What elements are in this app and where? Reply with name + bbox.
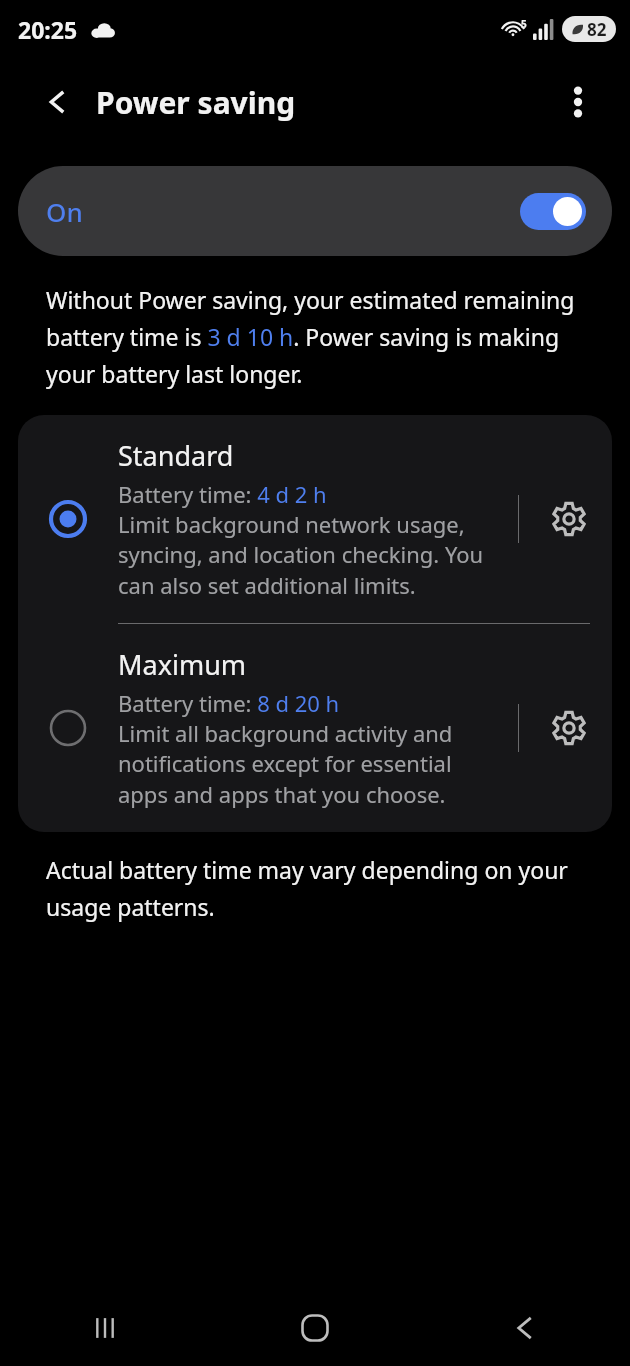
staticText: Battery time: 4 d 2 h xyxy=(118,479,327,509)
button[interactable]: Back xyxy=(34,78,82,126)
button[interactable]: Recents xyxy=(0,1290,210,1366)
staticText: Maximum xyxy=(118,646,247,683)
staticText: Battery time: 8 d 20 h xyxy=(118,688,340,718)
staticText: Limit background network usage, syncing,… xyxy=(118,509,500,601)
button[interactable]: Maximum xyxy=(18,624,612,832)
staticText: Standard xyxy=(118,437,234,474)
staticText: Actual battery time may vary depending o… xyxy=(46,854,584,923)
button[interactable]: Back xyxy=(420,1290,630,1366)
staticText: On xyxy=(46,194,83,229)
staticText: 5 xyxy=(521,17,527,31)
button[interactable]: On xyxy=(18,166,612,256)
staticText: 20:25 xyxy=(18,14,78,45)
button[interactable]: Home xyxy=(210,1290,420,1366)
button[interactable]: Settings for Standard xyxy=(543,493,595,545)
staticText: Without Power saving, your estimated rem… xyxy=(46,284,584,390)
staticText: 82 xyxy=(587,18,607,41)
button[interactable]: Settings for Maximum xyxy=(543,702,595,754)
staticText: Power saving xyxy=(96,82,296,123)
button[interactable]: More options xyxy=(554,78,602,126)
staticText: Limit all background activity and notifi… xyxy=(118,718,500,810)
button[interactable]: Standard xyxy=(18,415,612,623)
